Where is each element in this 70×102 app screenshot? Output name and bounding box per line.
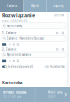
button[interactable]: Edytuj — [9, 43, 11, 46]
staticText: Wpisz nazwę — [7, 24, 23, 27]
button[interactable]: WYNIKI OGÓLNE — [0, 87, 35, 102]
staticText: Zadania — [7, 4, 17, 8]
staticText: schemat — [54, 13, 64, 17]
button[interactable]: Zadania — [0, 0, 23, 12]
staticText: Wyniki — [31, 4, 39, 8]
staticText: Rozwiązanie — [2, 12, 35, 19]
button[interactable]: Rozdzielka — [44, 65, 64, 68]
staticText: Zadanie — [6, 48, 17, 51]
button[interactable]: Opcje — [56, 48, 58, 50]
staticText: Zadanie: Narodziny Opozycji — [7, 37, 45, 40]
staticText: Wpisz treść zadania — [7, 53, 31, 56]
staticText: Karta — [2, 19, 8, 22]
staticText: 2. — [2, 48, 5, 51]
button[interactable]: Usuń — [17, 60, 19, 62]
button[interactable]: Więcej — [62, 48, 64, 50]
staticText: Uczeń — [48, 95, 56, 98]
button[interactable]: Opcje — [56, 32, 58, 34]
button[interactable]: schemat — [54, 13, 64, 17]
staticText: odpowiedzi — [10, 19, 27, 22]
button[interactable]: Podgląd — [13, 60, 15, 62]
staticText: 1. — [2, 31, 5, 35]
staticText: Wróć cały — [48, 91, 62, 94]
button[interactable]: Jedna odpowiedź — [2, 65, 33, 68]
button[interactable]: Zapisz — [2, 43, 6, 46]
staticText: 72 / 100 pkt — [3, 95, 21, 99]
button[interactable]: Usuń — [17, 43, 19, 46]
staticText: Rozdzielka — [50, 65, 64, 68]
staticText: Kartoteka — [2, 80, 22, 85]
staticText: Jedna odpowiedź — [8, 65, 33, 68]
button[interactable]: Raporty — [47, 0, 70, 12]
staticText: WYNIKI OGÓLNE — [3, 91, 26, 94]
button[interactable]: Podgląd — [13, 43, 15, 46]
button[interactable]: Edytuj — [9, 60, 11, 62]
staticText: Zadanie — [6, 31, 17, 35]
staticText: Raporty — [53, 4, 63, 8]
button[interactable]: Więcej — [62, 32, 64, 34]
button[interactable]: Wyniki — [23, 0, 47, 12]
button[interactable]: Wróć cały — [35, 87, 70, 102]
